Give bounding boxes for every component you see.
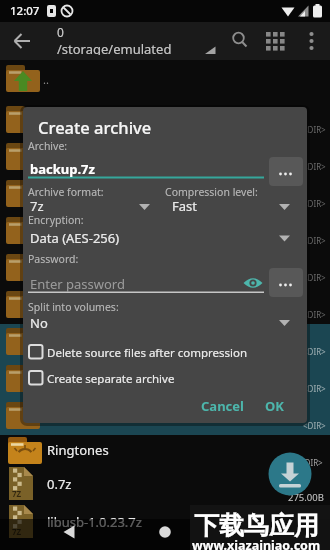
button[interactable] (269, 268, 303, 297)
staticText: Fast (172, 197, 197, 214)
staticText: No (30, 314, 48, 331)
staticText: <DIR> (303, 346, 326, 357)
button[interactable]: Delete source files after compression (47, 345, 297, 359)
staticText: Data (AES-256) (30, 229, 120, 246)
staticText: Password: (28, 252, 79, 266)
staticText: <DIR> (303, 272, 326, 283)
button[interactable] (269, 157, 303, 186)
staticText: /storage/emulated (57, 40, 172, 55)
button[interactable]: Ringtones (47, 441, 197, 458)
button[interactable] (55, 520, 85, 548)
button[interactable]: libusb-1.0.23.7z (47, 513, 197, 530)
staticText: Enter password (30, 275, 125, 292)
staticText: Encryption: (28, 213, 84, 227)
staticText: Create archive (38, 116, 152, 136)
staticText: Compression level: (165, 185, 258, 199)
button[interactable] (268, 452, 312, 496)
staticText: Archive format: (28, 185, 104, 199)
staticText: OK (265, 397, 284, 415)
staticText: <DIR> (303, 235, 326, 246)
button[interactable]: OK (254, 395, 294, 417)
staticText: <DIR> (303, 383, 326, 394)
staticText: <DIR> (303, 420, 326, 431)
button[interactable]: 0.7z (47, 475, 197, 492)
staticText: Ringtones (47, 441, 109, 458)
staticText: backup.7z (30, 160, 95, 178)
button[interactable]: Fast (172, 197, 292, 214)
staticText: 7z (30, 197, 44, 214)
button[interactable]: 7z (30, 197, 140, 214)
staticText: 0 (57, 24, 64, 39)
staticText: 下载鸟应用 (194, 510, 319, 540)
staticText: 7Z (12, 526, 22, 537)
button[interactable]: Enter password (30, 275, 230, 292)
staticText: 12:07 (10, 3, 40, 19)
staticText: libusb-1.0.23.7z (47, 513, 142, 530)
staticText: <DIR> (303, 124, 326, 135)
staticText: <DIR> (303, 161, 326, 172)
button[interactable]: Cancel (192, 395, 252, 417)
staticText: <DIR> (300, 457, 323, 468)
button[interactable]: backup.7z (30, 160, 260, 178)
staticText: 7Z (12, 488, 22, 499)
staticText: Create separate archive (47, 371, 175, 385)
staticText: 275.00B (288, 491, 324, 503)
staticText: <DIR> (303, 309, 326, 320)
staticText: Split into volumes: (28, 300, 119, 314)
staticText: 0.7z (47, 475, 72, 492)
staticText: .. (43, 72, 49, 87)
button[interactable]: No (30, 314, 294, 331)
staticText: Cancel (201, 397, 244, 415)
button[interactable] (150, 520, 180, 548)
button[interactable]: Data (AES-256) (30, 229, 294, 246)
staticText: Delete source files after compression (47, 345, 248, 359)
button[interactable]: /storage/emulated (57, 40, 202, 55)
staticText: www.xiazainiao.com (192, 537, 321, 550)
staticText: <DIR> (303, 198, 326, 209)
staticText: Archive: (28, 139, 68, 153)
button[interactable]: Create separate archive (47, 371, 297, 385)
